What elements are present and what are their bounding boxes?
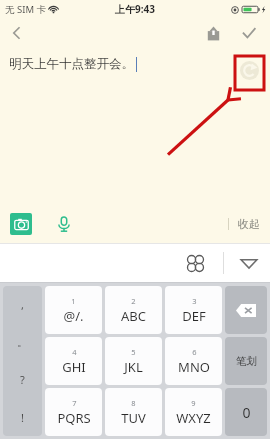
button[interactable]: 4 <box>45 337 102 385</box>
staticText: ABC <box>121 307 146 325</box>
button[interactable]: 0 <box>225 388 267 436</box>
button[interactable]: ? <box>3 360 42 398</box>
button[interactable]: 9 <box>165 388 222 436</box>
staticText: JKL <box>124 358 143 376</box>
button[interactable]: 7 <box>45 388 102 436</box>
staticText: 上午9:43 <box>115 2 155 16</box>
button[interactable]: 6 <box>165 337 222 385</box>
staticText: 。 <box>17 335 28 349</box>
button[interactable]: ! <box>3 398 42 436</box>
staticText: 7 <box>72 398 77 408</box>
staticText: DEF <box>182 307 206 325</box>
staticText: MNO <box>178 358 210 376</box>
button[interactable]: Camera <box>10 213 32 235</box>
staticText: ? <box>20 372 25 387</box>
button[interactable]: Back <box>0 18 34 48</box>
staticText: 3 <box>192 296 197 306</box>
button[interactable]: Done <box>234 18 264 48</box>
button[interactable]: 5 <box>105 337 162 385</box>
staticText: 9 <box>191 398 196 408</box>
button[interactable]: Backspace <box>225 286 267 334</box>
staticText: PQRS <box>57 409 91 427</box>
button[interactable]: 3 <box>165 286 222 334</box>
button[interactable]: Hide keyboard <box>232 246 266 280</box>
button[interactable]: 1 <box>45 286 102 334</box>
button[interactable]: Share <box>198 18 228 48</box>
button[interactable]: , <box>3 286 42 323</box>
staticText: @/. <box>63 307 84 325</box>
staticText: 4 <box>72 347 77 357</box>
staticText: 8 <box>131 398 136 408</box>
button[interactable]: Emoji <box>177 245 213 281</box>
staticText: , <box>21 297 24 312</box>
staticText: 0 <box>242 403 251 422</box>
staticText: 收起 <box>238 217 260 231</box>
staticText: ! <box>21 410 24 425</box>
button[interactable]: 笔划 <box>225 337 267 385</box>
button[interactable]: 8 <box>105 388 162 436</box>
staticText: TUV <box>121 409 146 427</box>
staticText: 无 SIM 卡 <box>5 3 46 16</box>
staticText: 笔划 <box>236 355 257 368</box>
staticText: 明天上午十点整开会。 <box>9 56 134 72</box>
staticText: 1 <box>71 296 76 306</box>
button[interactable]: Undo <box>240 61 259 80</box>
button[interactable]: 2 <box>105 286 162 334</box>
button[interactable]: 收起 <box>236 213 262 235</box>
staticText: GHI <box>62 358 86 376</box>
button[interactable]: Voice input <box>52 212 76 236</box>
staticText: 5 <box>131 347 136 357</box>
staticText: 6 <box>192 347 197 357</box>
staticText: WXYZ <box>176 409 211 427</box>
staticText: 2 <box>131 296 136 306</box>
